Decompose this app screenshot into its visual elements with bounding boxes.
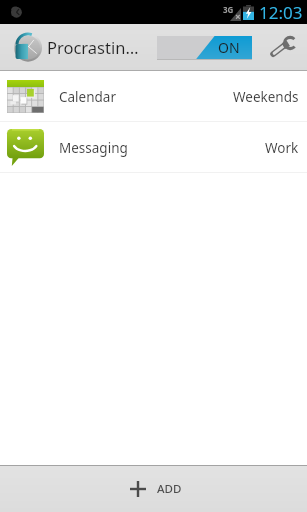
- staticText: ADD: [157, 481, 182, 497]
- staticText: Calendar: [59, 88, 116, 106]
- button[interactable]: Messaging: [0, 122, 307, 172]
- staticText: Messaging: [59, 139, 128, 157]
- staticText: 12:03: [259, 1, 303, 24]
- button[interactable]: ADD: [130, 481, 182, 497]
- staticText: Work: [265, 139, 299, 157]
- staticText: 3G: [223, 4, 234, 15]
- staticText: ON: [218, 38, 240, 57]
- button[interactable]: Settings: [262, 24, 304, 70]
- button[interactable]: Calendar: [0, 71, 307, 121]
- staticText: Weekends: [233, 88, 299, 106]
- button[interactable]: ON: [157, 36, 252, 60]
- staticText: Procrastin…: [47, 36, 139, 58]
